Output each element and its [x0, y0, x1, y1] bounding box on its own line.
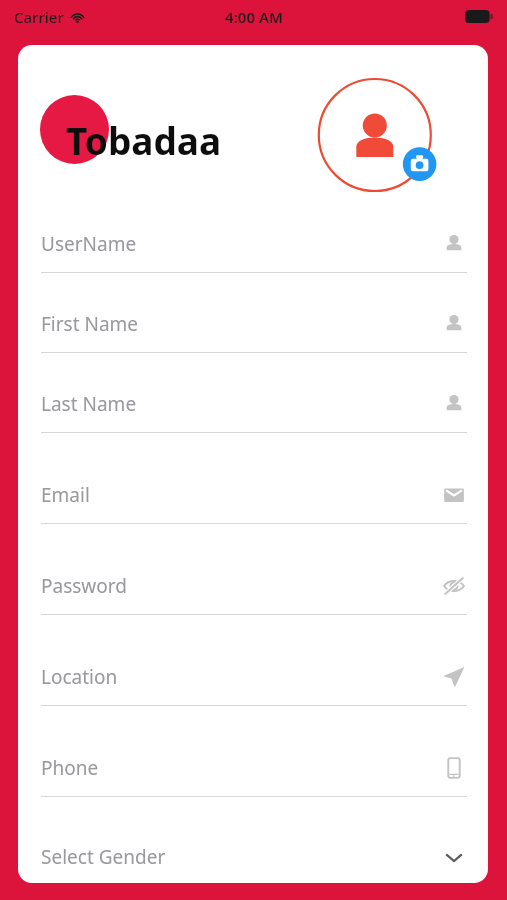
staticText: Email: [41, 482, 441, 508]
staticText: Carrier: [14, 7, 64, 27]
button[interactable]: Email: [41, 455, 467, 546]
staticText: Location: [41, 664, 441, 690]
button[interactable]: Location: [41, 637, 467, 728]
staticText: UserName: [41, 231, 441, 257]
button[interactable]: Select Gender: [41, 819, 467, 883]
button[interactable]: First Name: [41, 295, 467, 375]
button[interactable]: UserName: [41, 215, 467, 295]
staticText: First Name: [41, 311, 441, 337]
staticText: Tobadaa: [66, 115, 222, 165]
staticText: Last Name: [41, 391, 441, 417]
staticText: Phone: [41, 755, 441, 781]
button[interactable]: Last Name: [41, 375, 467, 455]
staticText: 4:00 AM: [225, 7, 283, 27]
button[interactable]: Password: [41, 546, 467, 637]
staticText: Password: [41, 573, 441, 599]
button[interactable]: Change profile photo: [316, 65, 456, 205]
button[interactable]: Phone: [41, 728, 467, 819]
staticText: Select Gender: [41, 844, 441, 870]
